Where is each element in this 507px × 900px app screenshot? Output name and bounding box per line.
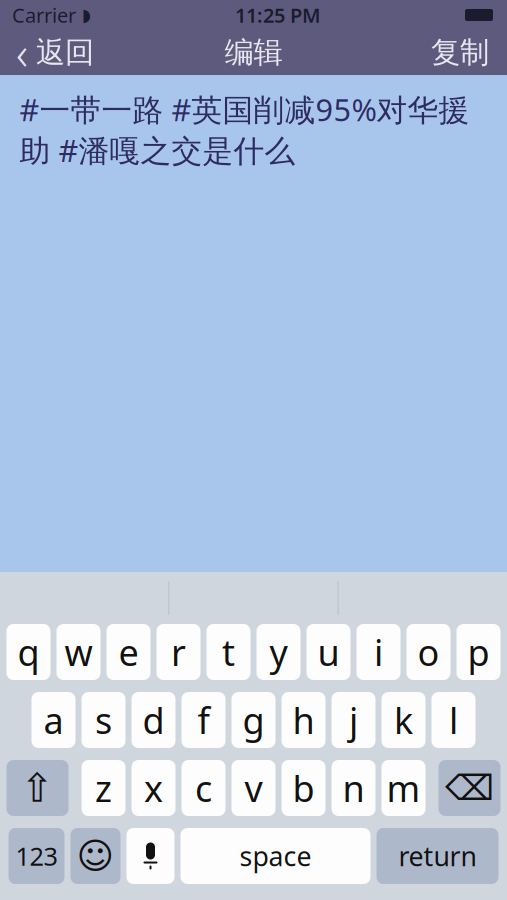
button[interactable]: p xyxy=(456,624,500,680)
button[interactable]: return xyxy=(376,828,498,884)
staticText: y xyxy=(269,628,287,676)
button[interactable]: r xyxy=(156,624,200,680)
staticText: ☺ xyxy=(76,836,114,876)
button[interactable]: 复制 xyxy=(419,30,507,75)
staticText: Carrier xyxy=(12,2,76,28)
staticText: 编辑 xyxy=(224,34,282,70)
button[interactable]: u xyxy=(306,624,350,680)
button[interactable]: 123 xyxy=(8,828,64,884)
button[interactable]: m xyxy=(381,760,425,816)
staticText: ‹ xyxy=(16,22,28,83)
staticText: t xyxy=(222,628,235,676)
button[interactable]: k xyxy=(381,692,425,748)
staticText: f xyxy=(197,696,209,744)
button[interactable]: Emoji xyxy=(70,828,120,884)
staticText: return xyxy=(398,838,476,874)
staticText: h xyxy=(292,696,314,744)
staticText: j xyxy=(349,696,358,744)
staticText: l xyxy=(449,696,458,744)
button[interactable]: Shift xyxy=(6,760,68,816)
staticText: ⌫ xyxy=(445,768,494,808)
button[interactable]: a xyxy=(31,692,75,748)
staticText: v xyxy=(244,764,262,812)
button[interactable]: space xyxy=(180,828,370,884)
staticText: b xyxy=(292,764,314,812)
staticText: s xyxy=(95,696,112,744)
button[interactable]: q xyxy=(6,624,50,680)
button[interactable]: v xyxy=(231,760,275,816)
button[interactable]: i xyxy=(356,624,400,680)
staticText: w xyxy=(64,628,92,676)
staticText: c xyxy=(195,764,212,812)
staticText: p xyxy=(467,628,489,676)
staticText: 11:25 PM xyxy=(235,2,321,28)
staticText: d xyxy=(142,696,164,744)
staticText: o xyxy=(417,628,439,676)
staticText: n xyxy=(342,764,364,812)
button[interactable]: j xyxy=(331,692,375,748)
staticText: #一带一路 #英国削减95%对华援助 #潘嘎之交是什么 xyxy=(19,89,469,170)
button[interactable]: z xyxy=(81,760,125,816)
staticText: x xyxy=(144,764,163,812)
button[interactable]: Delete xyxy=(438,760,500,816)
button[interactable]: f xyxy=(181,692,225,748)
button[interactable]: c xyxy=(181,760,225,816)
button[interactable]: h xyxy=(281,692,325,748)
button[interactable]: ‹ xyxy=(0,30,104,75)
staticText: z xyxy=(95,764,112,812)
button[interactable]: l xyxy=(431,692,475,748)
staticText: a xyxy=(43,696,63,744)
staticText: ◗ xyxy=(82,5,91,25)
staticText: g xyxy=(242,696,264,744)
button[interactable]: Dictate xyxy=(126,828,174,884)
button[interactable]: g xyxy=(231,692,275,748)
button[interactable]: d xyxy=(131,692,175,748)
staticText: 复制 xyxy=(431,34,489,70)
button[interactable]: s xyxy=(81,692,125,748)
staticText: k xyxy=(394,696,413,744)
staticText: i xyxy=(374,628,383,676)
staticText: e xyxy=(118,628,138,676)
button[interactable]: w xyxy=(56,624,100,680)
staticText: 返回 xyxy=(36,34,94,70)
staticText: r xyxy=(171,628,186,676)
button[interactable]: y xyxy=(256,624,300,680)
button[interactable]: n xyxy=(331,760,375,816)
staticText: q xyxy=(17,628,39,676)
staticText: 123 xyxy=(15,839,57,873)
staticText: m xyxy=(386,764,420,812)
staticText: ⇧ xyxy=(20,765,54,811)
button[interactable]: x xyxy=(131,760,175,816)
button[interactable]: e xyxy=(106,624,150,680)
button[interactable]: t xyxy=(206,624,250,680)
button[interactable]: b xyxy=(281,760,325,816)
button[interactable]: o xyxy=(406,624,450,680)
staticText: space xyxy=(239,838,311,874)
staticText: u xyxy=(317,628,339,676)
